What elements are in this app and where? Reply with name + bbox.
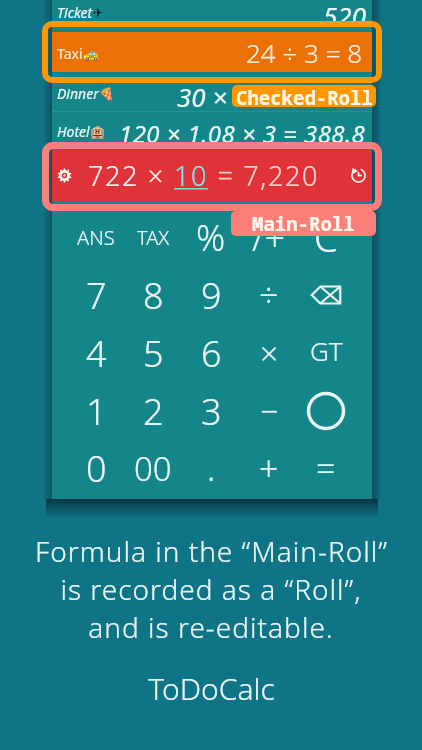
button[interactable]: GT [298,324,354,376]
staticText: C [314,211,338,263]
staticText: 520 [323,0,366,26]
staticText: 🏨 [90,125,105,139]
button[interactable]: 9 [183,269,239,321]
button[interactable]: + [241,442,297,494]
other: Settings [57,168,72,183]
button[interactable]: × [241,327,297,379]
button[interactable]: ÷ [241,269,297,321]
staticText: 00 [134,446,172,491]
staticText: 120 × 1.08 × 3 = 388.8 [119,117,366,145]
button[interactable]: ToDoCalc [148,668,275,709]
staticText: 30 × [177,79,228,107]
button[interactable]: 0 [68,442,124,494]
staticText: = [316,445,336,491]
button[interactable]: 3 [183,385,239,437]
button[interactable]: = [298,442,354,494]
staticText: % [196,213,226,262]
button[interactable]: ANS [68,211,124,263]
staticText: 6 [201,329,222,378]
button[interactable]: . [183,442,239,494]
staticText: 1 [86,387,107,436]
staticText: 🍕 [99,87,114,101]
button[interactable]: Ticket [52,0,372,26]
staticText: ÷ [259,272,279,318]
staticText: TAX [137,224,170,251]
staticText: + [259,445,279,491]
button[interactable]: 00 [125,442,181,494]
staticText: /+ [252,213,286,262]
button[interactable]: Hotel [52,117,372,145]
staticText: 24 ÷ 3 = 8 [246,35,363,70]
button[interactable]: Settings [52,150,372,201]
staticText: 8 [143,271,164,320]
staticText: Ticket [57,3,93,22]
staticText: GT [310,333,343,368]
button[interactable]: Dinner [52,79,372,107]
button[interactable]: Taxi [52,32,372,72]
staticText: = 7,220 [209,157,319,194]
staticText: Dinner [57,84,99,103]
staticText: 5 [143,329,164,378]
button[interactable]: Main-Roll [231,211,376,236]
button[interactable]: is recorded as a “Roll”, [60,570,362,608]
staticText: Main-Roll [252,211,355,236]
staticText: ✈️ [93,6,104,20]
button[interactable]: 2 [125,385,181,437]
staticText: Taxi [57,44,83,63]
staticText: 2 [143,387,164,436]
staticText: 4 [86,329,107,378]
button[interactable]: Checked-Roll [232,85,376,107]
staticText: 10 [174,157,209,194]
staticText: − [260,389,279,433]
button[interactable]: Formula in the “Main-Roll” [35,532,388,570]
staticText: 7 [86,271,107,320]
button[interactable]: TAX [125,211,181,263]
button[interactable]: Backspace [298,269,354,321]
button[interactable]: 6 [183,327,239,379]
staticText: Hotel [57,122,90,141]
button[interactable]: % [183,211,239,263]
button[interactable]: /+ [241,211,297,263]
button[interactable]: 4 [68,327,124,379]
staticText: 3 [201,387,222,436]
button[interactable]: − [241,385,297,437]
button[interactable]: Enter [298,385,354,437]
button[interactable]: 1 [68,385,124,437]
staticText: 722 × [88,157,174,194]
staticText: 🚕 [83,46,100,61]
button[interactable]: 7 [68,269,124,321]
staticText: 0 [86,444,107,493]
button[interactable]: and is re-editable. [88,608,334,646]
staticText: × [260,331,279,375]
button[interactable]: 5 [125,327,181,379]
staticText: 9 [201,271,222,320]
staticText: . [207,445,216,491]
staticText: Checked-Roll [236,85,373,107]
other: History [351,168,366,183]
staticText: ANS [77,224,115,251]
button[interactable]: C [298,211,354,263]
button[interactable]: 8 [125,269,181,321]
